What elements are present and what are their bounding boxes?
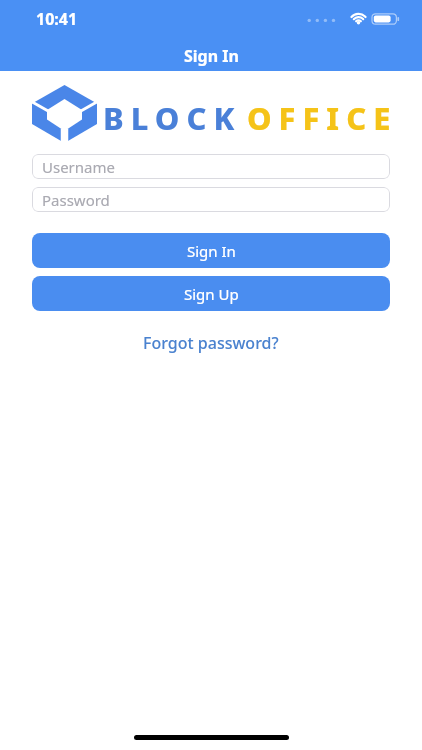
staticText: Sign Up <box>184 284 239 304</box>
button[interactable]: Sign Up <box>32 276 390 311</box>
staticText: Sign In <box>184 45 239 67</box>
button[interactable]: Sign In <box>32 233 390 268</box>
button[interactable]: Username <box>32 154 390 179</box>
staticText: Password <box>42 190 110 210</box>
staticText: Forgot password? <box>143 332 279 354</box>
button[interactable]: Password <box>32 187 390 212</box>
staticText: OFFICE <box>247 97 398 139</box>
button[interactable]: Forgot password? <box>137 330 285 356</box>
staticText: Sign In <box>187 241 236 261</box>
staticText: BLOCK <box>103 97 242 139</box>
staticText: 10:41 <box>36 8 78 30</box>
staticText: Username <box>42 157 115 177</box>
